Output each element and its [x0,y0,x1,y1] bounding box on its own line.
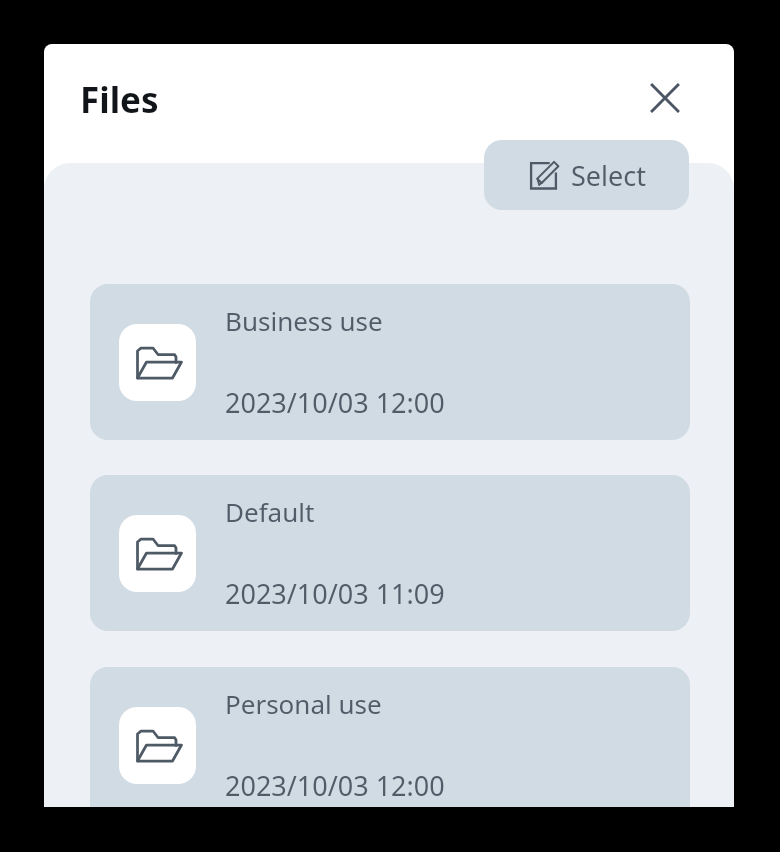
staticText: Select [571,157,646,194]
button[interactable]: Close [634,67,696,129]
staticText: Business use [225,303,383,338]
staticText: Default [225,494,315,529]
button[interactable]: Business use [90,284,690,440]
button[interactable]: Select [484,140,689,210]
staticText: Personal use [225,686,382,721]
staticText: 2023/10/03 12:00 [225,767,445,804]
staticText: Files [80,76,159,124]
staticText: 2023/10/03 11:09 [225,575,445,612]
staticText: 2023/10/03 12:00 [225,384,445,421]
button[interactable]: Default [90,475,690,631]
button[interactable]: Personal use [90,667,690,807]
